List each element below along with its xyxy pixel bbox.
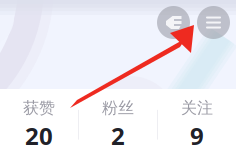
button[interactable]: 获赞 bbox=[0, 98, 78, 151]
staticText: 20 bbox=[25, 120, 53, 152]
button[interactable]: 粉丝 bbox=[79, 98, 157, 151]
staticText: 获赞 bbox=[23, 98, 55, 118]
staticText: 2 bbox=[111, 120, 125, 152]
button[interactable]: 关注 bbox=[158, 98, 236, 151]
button[interactable]: Cursor bbox=[157, 6, 190, 39]
staticText: 关注 bbox=[181, 98, 213, 118]
staticText: 9 bbox=[190, 120, 204, 152]
staticText: 粉丝 bbox=[102, 98, 134, 118]
button[interactable]: Menu bbox=[197, 6, 230, 39]
